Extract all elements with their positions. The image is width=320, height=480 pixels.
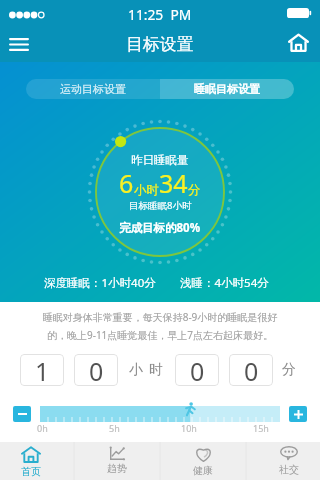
button[interactable]: Increase (289, 406, 307, 422)
staticText: 昨日睡眠量 (131, 153, 189, 167)
staticText: 运动目标设置 (60, 82, 126, 96)
staticText: 5h (109, 422, 120, 434)
staticText: 深度睡眠：1小时40分 (44, 275, 156, 291)
staticText: 分 (282, 361, 296, 379)
button[interactable] (40, 406, 280, 422)
button[interactable]: Menu (0, 26, 38, 62)
staticText: 1 (35, 354, 50, 386)
staticText: 15h (253, 422, 269, 434)
button[interactable]: 0 (175, 354, 219, 386)
staticText: 趋势 (107, 462, 127, 475)
staticText: 完成目标的80% (119, 220, 201, 236)
staticText: 小时 (134, 182, 159, 198)
staticText: 0h (37, 422, 48, 434)
staticText: 0 (244, 354, 259, 386)
staticText: 目标睡眠8小时 (129, 199, 192, 212)
button[interactable]: 首页 (1, 442, 61, 480)
staticText: 目标设置 (126, 34, 194, 55)
button[interactable]: 健康 (173, 442, 233, 480)
staticText: 睡眠对身体非常重要，每天保持8-9小时的睡眠是很好 的，晚上9-11点睡觉最佳，… (36, 310, 284, 342)
button[interactable]: 0 (229, 354, 273, 386)
staticText: 浅睡：4小时54分 (180, 275, 269, 291)
button[interactable]: Decrease (13, 406, 31, 422)
button[interactable]: 1 (20, 354, 64, 386)
staticText: 分 (188, 182, 201, 198)
button[interactable]: Home (279, 24, 317, 60)
staticText: 健康 (193, 464, 213, 477)
button[interactable]: 0 (74, 354, 118, 386)
staticText: 10h (181, 422, 197, 434)
staticText: 首页 (21, 465, 41, 478)
staticText: 6 (119, 166, 134, 200)
button[interactable]: 趋势 (87, 442, 147, 480)
staticText: 0 (190, 354, 205, 386)
staticText: 睡眠目标设置 (194, 82, 260, 96)
button[interactable]: 运动目标设置 (26, 79, 160, 99)
staticText: 小时 (126, 361, 166, 379)
staticText: 0 (89, 354, 104, 386)
button[interactable]: 睡眠目标设置 (160, 79, 294, 99)
staticText: 11:25 PM (128, 5, 192, 24)
staticText: 社交 (279, 463, 299, 476)
button[interactable]: 社交 (259, 442, 319, 480)
staticText: 34 (159, 166, 188, 200)
